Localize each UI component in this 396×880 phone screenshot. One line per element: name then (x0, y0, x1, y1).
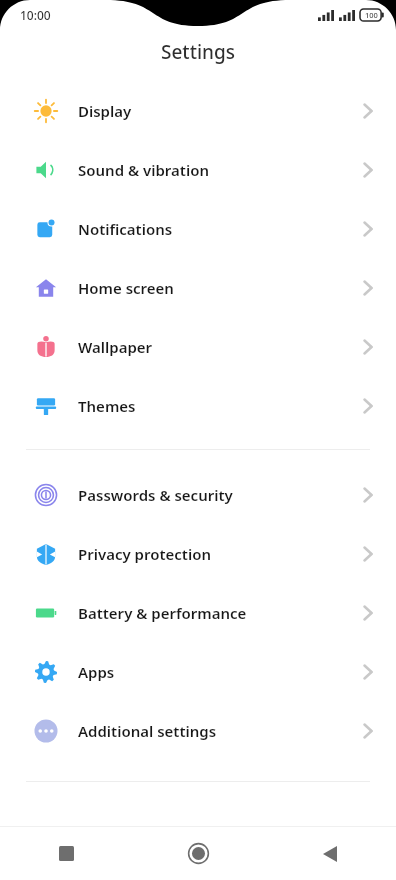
staticText: Display (78, 101, 364, 121)
staticText: Privacy protection (78, 544, 364, 564)
staticText: Additional settings (78, 721, 364, 741)
staticText: 10:00 (20, 7, 51, 23)
button[interactable]: Passwords & security (0, 465, 396, 524)
button[interactable]: Back (264, 827, 396, 880)
button[interactable]: Additional settings (0, 701, 396, 760)
button[interactable]: Privacy protection (0, 524, 396, 583)
button[interactable]: Home screen (0, 258, 396, 317)
staticText: Apps (78, 662, 364, 682)
button[interactable]: Battery & performance (0, 583, 396, 642)
staticText: Passwords & security (78, 485, 364, 505)
staticText: Notifications (78, 219, 364, 239)
button[interactable]: Notifications (0, 199, 396, 258)
staticText: Sound & vibration (78, 160, 364, 180)
button[interactable]: Display (0, 81, 396, 140)
staticText: Settings (161, 39, 235, 65)
button[interactable]: Recent apps (0, 827, 132, 880)
button[interactable]: Home (132, 827, 264, 880)
button[interactable]: Sound & vibration (0, 140, 396, 199)
staticText: Battery & performance (78, 603, 364, 623)
staticText: Themes (78, 396, 364, 416)
staticText: Wallpaper (78, 337, 364, 357)
staticText: Home screen (78, 278, 364, 298)
button[interactable]: Wallpaper (0, 317, 396, 376)
button[interactable]: Themes (0, 376, 396, 435)
staticText: 100 (365, 10, 378, 20)
button[interactable]: Apps (0, 642, 396, 701)
